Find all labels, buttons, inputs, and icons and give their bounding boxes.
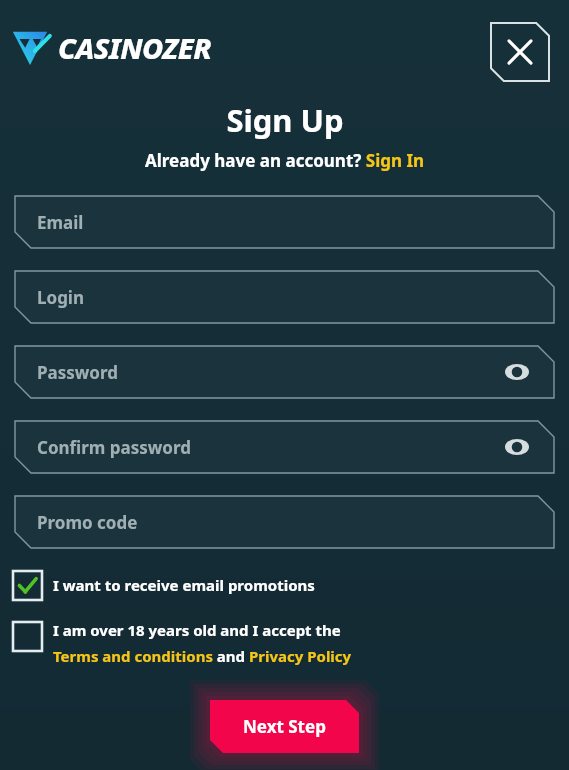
button[interactable]: CASINOZER [12,27,212,67]
staticText: Next Step [243,715,326,738]
button[interactable]: Email [15,196,554,248]
staticText: Password [37,361,118,384]
button[interactable]: Password [15,346,554,398]
button[interactable]: Close [491,23,549,81]
button[interactable]: Confirm password [15,421,554,473]
button[interactable]: Toggle password visibility [502,432,532,462]
staticText: Login [37,286,85,309]
staticText: Terms and conditions and Privacy Policy [53,646,352,666]
button[interactable]: Toggle password visibility [502,357,532,387]
button[interactable]: Login [15,271,554,323]
staticText: Confirm password [37,436,192,459]
staticText: CASINOZER [58,28,212,67]
button[interactable]: Already have an account? Sign In [145,149,425,172]
button[interactable]: I am over 18 years old and I accept the [13,620,352,666]
staticText: Promo code [37,511,138,534]
staticText: I want to receive email promotions [53,575,315,595]
staticText: Email [37,211,84,234]
button[interactable]: I want to receive email promotions [13,569,315,601]
staticText: Sign Up [226,99,344,141]
button[interactable]: Next Step [210,700,359,753]
staticText: Already have an account? Sign In [145,149,425,172]
staticText: I am over 18 years old and I accept the [53,620,341,640]
button[interactable]: Promo code [15,496,554,548]
